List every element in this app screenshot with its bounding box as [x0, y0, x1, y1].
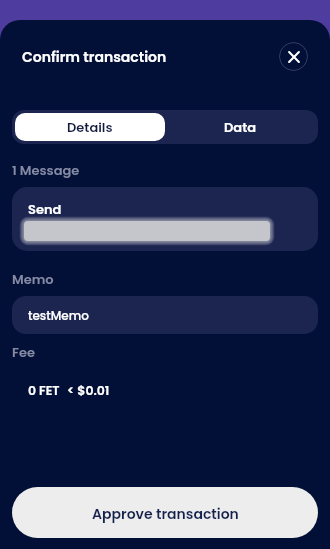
staticText: testMemo [28, 307, 89, 324]
staticText: Confirm transaction [22, 47, 167, 67]
staticText: Fee [12, 343, 35, 361]
staticText: Details [67, 118, 113, 136]
staticText: Approve transaction [92, 504, 239, 524]
staticText: Memo [12, 270, 54, 288]
staticText: Send [28, 200, 62, 218]
button[interactable]: Details [15, 113, 165, 141]
staticText: < $0.01 [67, 382, 110, 399]
staticText: Data [224, 118, 256, 136]
staticText: 1 Message [12, 161, 80, 179]
button[interactable]: Data [165, 113, 315, 141]
button[interactable]: Close [279, 42, 308, 71]
staticText: 0 FET [28, 382, 60, 399]
button[interactable]: Approve transaction [12, 487, 318, 538]
